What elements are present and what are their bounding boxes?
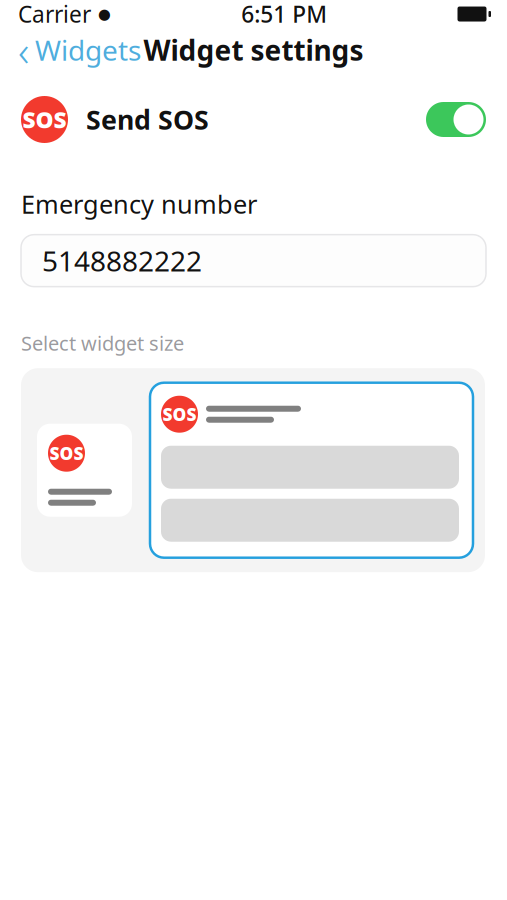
staticText: SOS <box>49 442 83 465</box>
button[interactable]: Large widget size, selected <box>150 383 473 558</box>
staticText: Send SOS <box>86 102 209 137</box>
staticText: 6:51 PM <box>241 0 327 29</box>
staticText: ‹ <box>18 22 29 78</box>
button[interactable]: 5148882222 <box>21 235 486 287</box>
staticText: ● <box>98 6 111 22</box>
staticText: SOS <box>22 104 66 134</box>
button[interactable]: Small widget size <box>37 424 132 517</box>
staticText: Carrier <box>18 0 91 29</box>
staticText: SOS <box>162 403 196 426</box>
button[interactable]: ‹ <box>14 17 145 83</box>
staticText: Select widget size <box>21 330 184 356</box>
staticText: Emergency number <box>21 187 257 221</box>
staticText: 5148882222 <box>42 242 202 279</box>
staticText: Widget settings <box>143 31 363 69</box>
staticText: Widgets <box>35 31 141 69</box>
button[interactable]: Send SOS, on <box>426 102 486 137</box>
